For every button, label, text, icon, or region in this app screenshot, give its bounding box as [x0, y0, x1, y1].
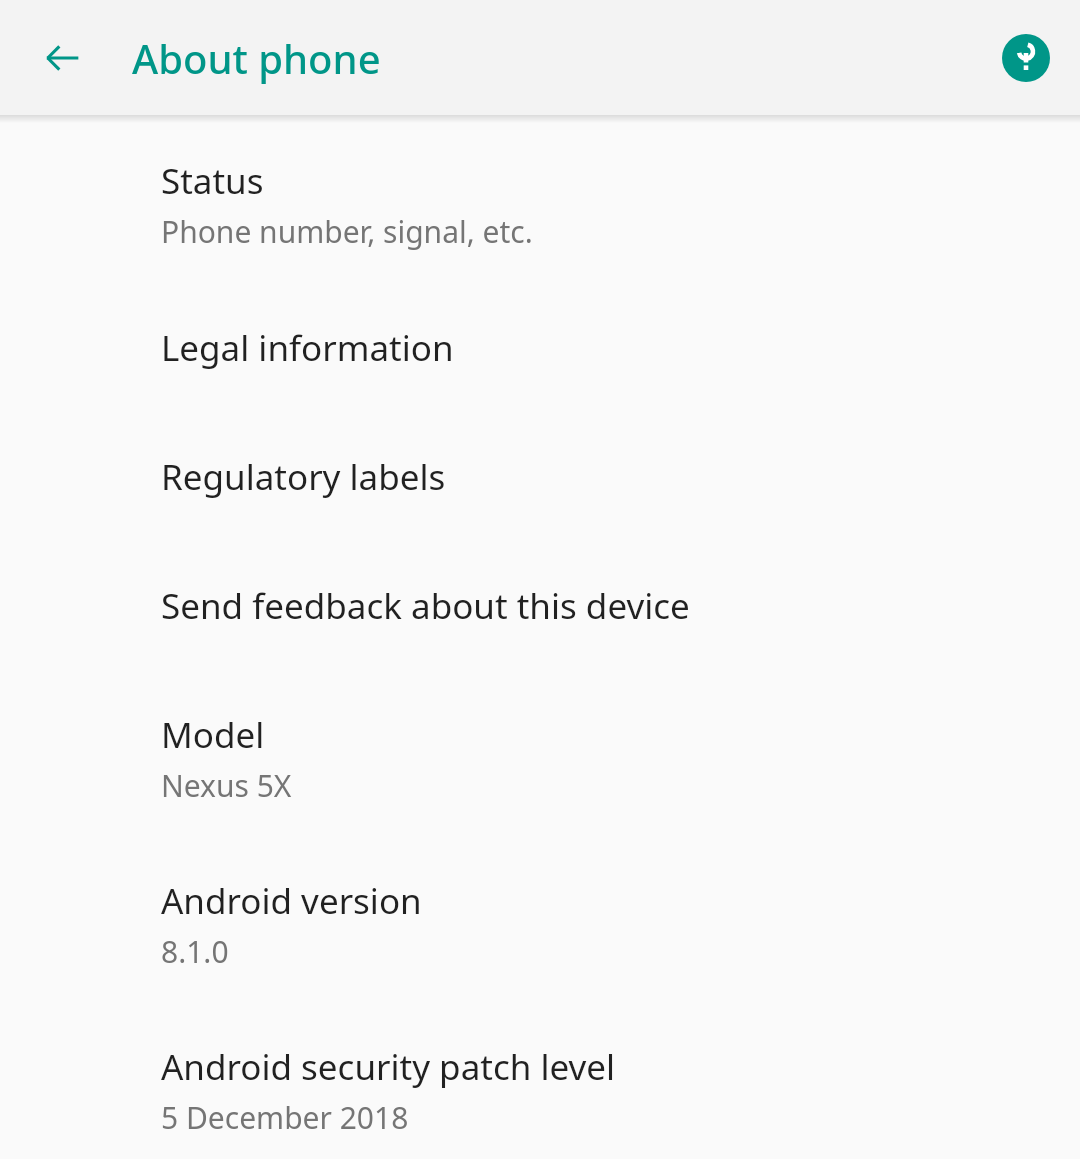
staticText: Phone number, signal, etc.	[161, 211, 533, 252]
staticText: About phone	[132, 31, 995, 85]
button[interactable]: Regulatory labels	[0, 372, 1080, 501]
button[interactable]: Android version	[0, 806, 1080, 972]
staticText: Android version	[161, 877, 422, 925]
staticText: Send feedback about this device	[161, 582, 690, 630]
staticText: 5 December 2018	[161, 1097, 409, 1138]
staticText: Legal information	[161, 324, 454, 372]
button[interactable]: Legal information	[0, 252, 1080, 372]
staticText: Nexus 5X	[161, 765, 292, 806]
staticText: Regulatory labels	[161, 453, 446, 501]
button[interactable]: Model	[0, 630, 1080, 806]
button[interactable]: Android security patch level	[0, 972, 1080, 1138]
staticText: Status	[161, 157, 264, 205]
button[interactable]: Send feedback about this device	[0, 501, 1080, 630]
staticText: 8.1.0	[161, 931, 229, 972]
button[interactable]: Back	[29, 25, 95, 91]
button[interactable]: Status	[0, 123, 1080, 252]
staticText: Model	[161, 711, 265, 759]
staticText: Android security patch level	[161, 1043, 616, 1091]
button[interactable]: Help	[995, 27, 1057, 89]
